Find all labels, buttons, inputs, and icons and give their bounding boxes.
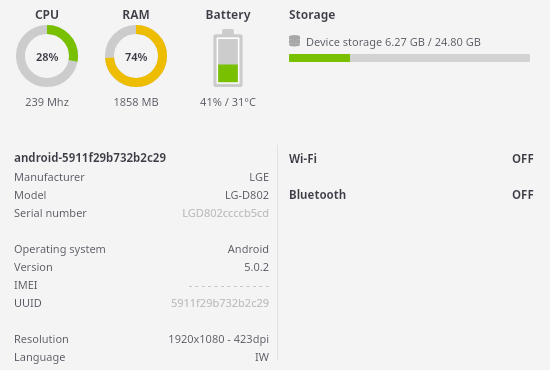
staticText: Battery: [183, 6, 273, 22]
staticText: 1858 MB: [86, 94, 186, 109]
button[interactable]: Version: [14, 257, 269, 275]
staticText: Resolution: [14, 331, 69, 346]
button[interactable]: IMEI: [14, 275, 269, 293]
staticText: 41% / 31°C: [178, 94, 278, 109]
staticText: LGD802ccccb5cd: [182, 205, 269, 220]
button[interactable]: Serial number: [14, 203, 269, 221]
staticText: Android: [227, 241, 269, 256]
button[interactable]: Battery level 41 percent: [211, 29, 245, 87]
staticText: 74%: [125, 49, 148, 64]
button[interactable]: UUID: [14, 293, 269, 311]
staticText: Bluetooth: [289, 187, 347, 203]
staticText: Device storage 6.27 GB / 24.80 GB: [306, 34, 481, 49]
button[interactable]: Wi-Fi: [289, 148, 534, 170]
staticText: 1920x1080 - 423dpi: [168, 331, 269, 346]
button[interactable]: Model: [14, 185, 269, 203]
staticText: 5911f29b732b2c29: [170, 295, 269, 310]
staticText: Model: [14, 187, 47, 202]
staticText: LG-D802: [225, 187, 269, 202]
staticText: IW: [255, 349, 269, 364]
button[interactable]: Resolution: [14, 329, 269, 347]
staticText: IMEI: [14, 277, 38, 292]
staticText: RAM: [91, 6, 181, 22]
staticText: Language: [14, 349, 66, 364]
staticText: Manufacturer: [14, 169, 85, 184]
button[interactable]: Bluetooth: [289, 184, 534, 206]
staticText: LGE: [249, 169, 269, 184]
staticText: CPU: [2, 6, 92, 22]
staticText: OFF: [512, 151, 534, 167]
staticText: android-5911f29b732b2c29: [14, 150, 166, 166]
staticText: 5.0.2: [244, 259, 269, 274]
staticText: Serial number: [14, 205, 87, 220]
staticText: 239 Mhz: [0, 94, 97, 109]
button[interactable]: Operating system: [14, 239, 269, 257]
staticText: Version: [14, 259, 53, 274]
button[interactable]: Language: [14, 347, 269, 365]
staticText: Operating system: [14, 241, 106, 256]
staticText: UUID: [14, 295, 42, 310]
staticText: - - - - - - - - - - - - -: [188, 277, 269, 292]
staticText: Storage: [289, 6, 336, 22]
staticText: 28%: [36, 49, 59, 64]
staticText: OFF: [512, 187, 534, 203]
staticText: Wi-Fi: [289, 151, 317, 167]
button[interactable]: Manufacturer: [14, 167, 269, 185]
